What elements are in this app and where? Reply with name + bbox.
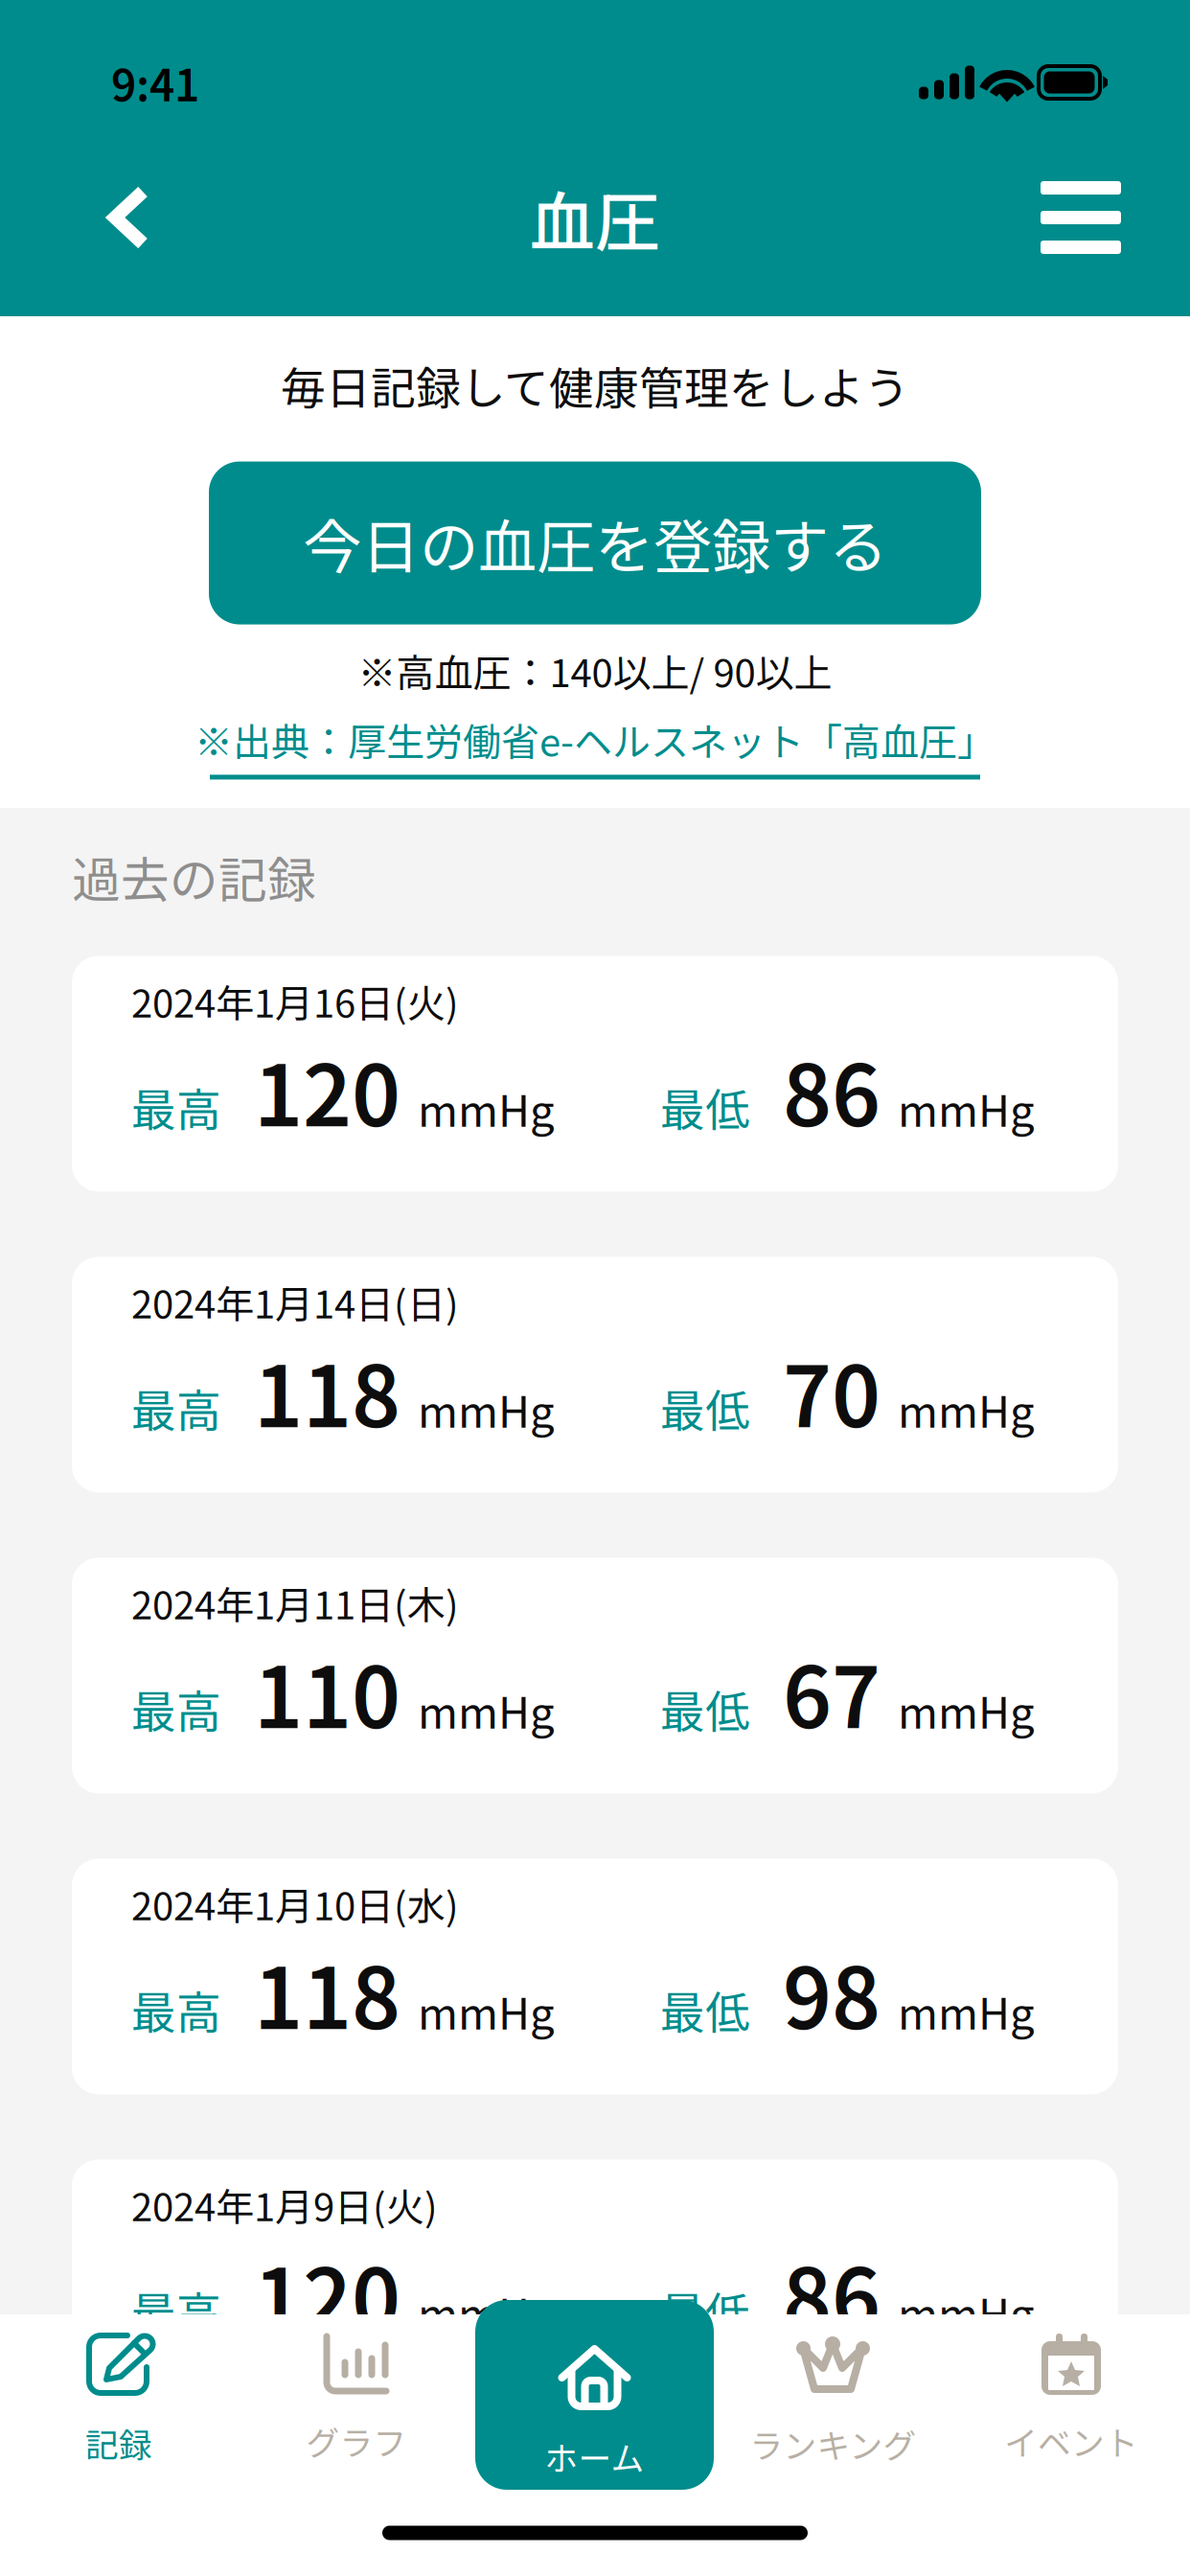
- staticText: ランキング: [750, 2420, 916, 2468]
- staticText: 2024年1月9日(火): [131, 2177, 438, 2232]
- staticText: 2024年1月11日(木): [131, 1575, 459, 1630]
- staticText: 2024年1月10日(水): [131, 1876, 459, 1931]
- staticText: 2024年1月14日(日): [131, 1274, 459, 1329]
- button[interactable]: 戻る: [66, 148, 191, 287]
- staticText: イベント: [1004, 2417, 1138, 2465]
- staticText: 最高: [131, 2278, 221, 2343]
- button[interactable]: 記録: [0, 2300, 238, 2490]
- staticText: mmHg: [898, 1678, 1035, 1741]
- staticText: 最低: [660, 1074, 750, 1139]
- button[interactable]: イベント: [952, 2300, 1190, 2490]
- staticText: mmHg: [898, 1076, 1035, 1139]
- button[interactable]: ※出典：厚生労働省e-ヘルスネット「高血圧」: [195, 712, 995, 780]
- staticText: 毎日記録して健康管理をしよう: [281, 353, 909, 417]
- staticText: 記録: [85, 2419, 152, 2467]
- staticText: 98: [783, 1931, 881, 2053]
- staticText: 最低: [660, 1977, 750, 2042]
- staticText: 最高: [131, 1375, 221, 1440]
- staticText: mmHg: [418, 2280, 555, 2343]
- staticText: 最高: [131, 1676, 221, 1741]
- staticText: 最低: [660, 2278, 750, 2343]
- button[interactable]: グラフ: [238, 2300, 475, 2490]
- staticText: 86: [783, 1029, 881, 1151]
- staticText: mmHg: [898, 1979, 1035, 2042]
- button[interactable]: ランキング: [714, 2300, 952, 2490]
- staticText: 67: [783, 1630, 881, 1753]
- staticText: 過去の記録: [72, 841, 316, 912]
- staticText: ※高血圧：140以上/ 90以上: [358, 643, 832, 698]
- staticText: 120: [254, 2232, 400, 2354]
- staticText: 118: [254, 1931, 400, 2053]
- button[interactable]: ホーム: [475, 2300, 714, 2490]
- staticText: 最高: [131, 1977, 221, 2042]
- staticText: 血圧: [530, 170, 660, 265]
- button[interactable]: メニュー: [1011, 148, 1151, 287]
- staticText: 86: [783, 2232, 881, 2354]
- staticText: グラフ: [306, 2417, 407, 2465]
- staticText: 9:41: [111, 51, 199, 114]
- staticText: 120: [254, 1029, 400, 1151]
- staticText: mmHg: [418, 1979, 555, 2042]
- staticText: 70: [783, 1329, 881, 1452]
- staticText: 最低: [660, 1676, 750, 1741]
- button[interactable]: 今日の血圧を登録する: [209, 462, 981, 624]
- staticText: 118: [254, 1329, 400, 1452]
- staticText: mmHg: [418, 1076, 555, 1139]
- staticText: mmHg: [418, 1377, 555, 1440]
- staticText: ※出典：厚生労働省e-ヘルスネット「高血圧」: [195, 712, 995, 767]
- staticText: 今日の血圧を登録する: [303, 500, 887, 586]
- staticText: 2024年1月16日(火): [131, 973, 459, 1029]
- staticText: 最高: [131, 1074, 221, 1139]
- staticText: mmHg: [418, 1678, 555, 1741]
- staticText: 110: [254, 1630, 400, 1753]
- staticText: mmHg: [898, 1377, 1035, 1440]
- staticText: 最低: [660, 1375, 750, 1440]
- staticText: mmHg: [898, 2280, 1035, 2343]
- staticText: ホーム: [545, 2432, 644, 2480]
